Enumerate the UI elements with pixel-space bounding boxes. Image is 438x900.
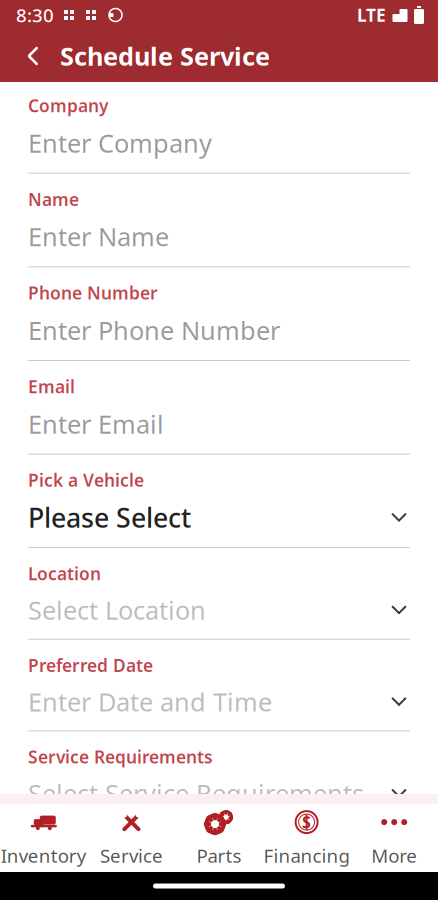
staticText: Enter Describe Service Requirements (28, 869, 292, 900)
staticText: Name (28, 188, 79, 211)
staticText: Enter Company (28, 126, 212, 160)
staticText: Parts (196, 843, 241, 868)
staticText: Select Service Requirements (28, 776, 364, 810)
staticText: Location (28, 562, 101, 585)
button[interactable]: Company (0, 94, 438, 174)
staticText: Service Requirements (28, 745, 213, 768)
staticText: Enter Email (28, 407, 164, 441)
button[interactable]: Describe Service Requirements (0, 837, 438, 900)
button[interactable]: Location (0, 562, 438, 640)
staticText: LTE (357, 3, 386, 26)
button[interactable]: Inventory (0, 804, 88, 872)
staticText: Select Location (28, 593, 206, 627)
staticText: Service (100, 843, 163, 868)
button[interactable]: Name (0, 188, 438, 267)
staticText: Enter Phone Number (28, 313, 280, 347)
staticText: Please Select (28, 500, 191, 535)
staticText: Financing (264, 843, 350, 868)
button[interactable]: Parts (175, 804, 263, 872)
staticText: Company (28, 94, 108, 117)
staticText: Phone Number (28, 281, 158, 304)
staticText: Enter Date and Time (28, 685, 272, 718)
button[interactable]: Preferred Date (0, 654, 438, 731)
button[interactable]: Pick a Vehicle (0, 469, 438, 548)
staticText: S (302, 811, 311, 833)
button[interactable]: Phone Number (0, 281, 438, 361)
staticText: Inventory (1, 843, 87, 868)
button[interactable]: Back (14, 37, 52, 75)
staticText: More (371, 843, 417, 868)
staticText: Enter Name (28, 220, 169, 253)
staticText: Preferred Date (28, 654, 153, 677)
button[interactable]: S (263, 804, 350, 872)
button[interactable]: Service (88, 804, 175, 872)
staticText: Schedule Service (60, 39, 270, 73)
staticText: Pick a Vehicle (28, 469, 144, 492)
staticText: Email (28, 375, 75, 398)
staticText: Describe Service Requirements (28, 837, 293, 860)
staticText: 8:30 (16, 3, 54, 27)
button[interactable]: More (350, 804, 438, 872)
button[interactable]: Service Requirements (0, 745, 438, 823)
button[interactable]: Email (0, 375, 438, 455)
